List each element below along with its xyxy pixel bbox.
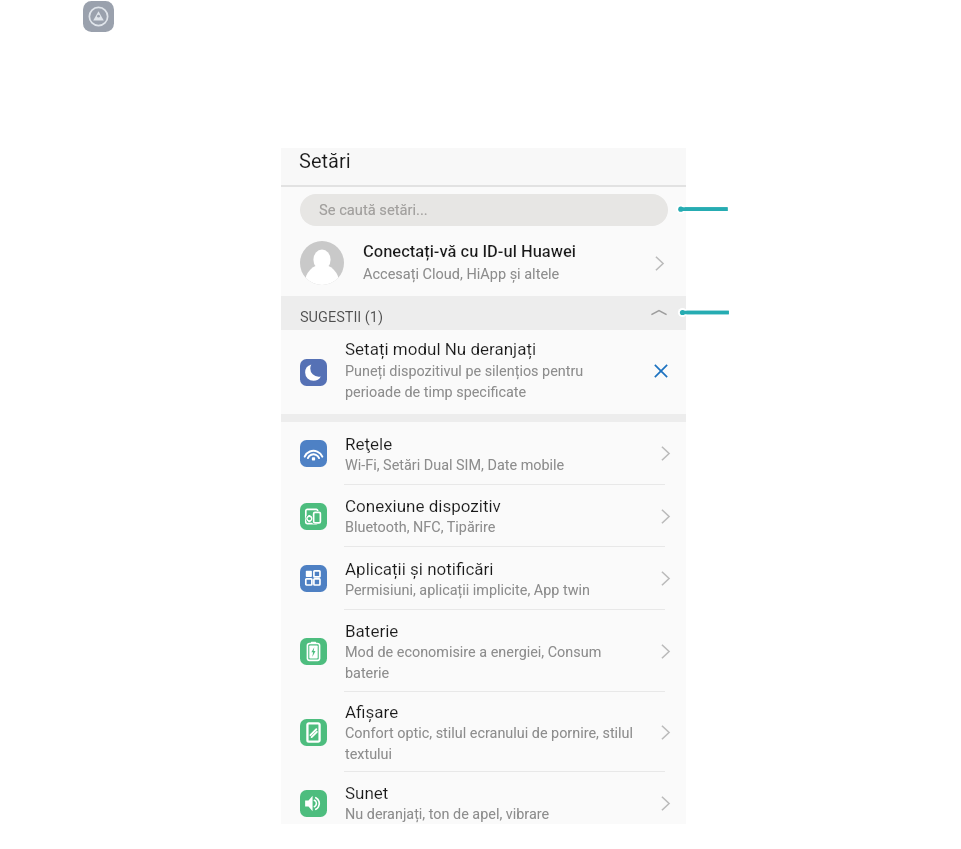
staticText: Bluetooth, NFC, Tipărire bbox=[345, 519, 496, 536]
staticText: Mod de economisire a energiei, Consum ba… bbox=[345, 644, 644, 681]
staticText: Confort optic, stilul ecranului de porni… bbox=[345, 725, 644, 762]
staticText: Permisiuni, aplicații implicite, App twi… bbox=[345, 582, 590, 599]
staticText: SUGESTII (1) bbox=[300, 309, 384, 326]
button[interactable]: Collapse suggestions bbox=[632, 296, 686, 330]
staticText: Sunet bbox=[345, 783, 389, 803]
button[interactable]: Baterie bbox=[281, 610, 686, 692]
staticText: Conectați-vă cu ID-ul Huawei bbox=[363, 242, 577, 261]
staticText: Aplicații și notificări bbox=[345, 559, 494, 579]
staticText: Baterie bbox=[345, 621, 399, 641]
button[interactable]: Aplicații și notificări bbox=[281, 547, 686, 610]
staticText: Accesați Cloud, HiApp și altele bbox=[363, 266, 560, 283]
button[interactable]: Se caută setări... bbox=[300, 194, 668, 226]
staticText: Afișare bbox=[345, 702, 399, 722]
staticText: Puneți dispozitivul pe silențios pentru … bbox=[345, 363, 635, 401]
staticText: Conexiune dispozitiv bbox=[345, 496, 501, 516]
button[interactable]: Conexiune dispozitiv bbox=[281, 485, 686, 547]
staticText: Setați modul Nu deranjați bbox=[345, 339, 537, 359]
staticText: Wi-Fi, Setări Dual SIM, Date mobile bbox=[345, 457, 565, 474]
staticText: Nu deranjați, ton de apel, vibrare bbox=[345, 806, 550, 823]
staticText: Setări bbox=[299, 149, 351, 172]
button[interactable]: Reţele bbox=[281, 422, 686, 485]
button[interactable]: Setați modul Nu deranjați bbox=[281, 330, 686, 414]
button[interactable]: Dismiss suggestion bbox=[635, 330, 686, 414]
button[interactable]: Afișare bbox=[281, 692, 686, 772]
button[interactable]: Settings app icon bbox=[83, 1, 114, 32]
other: Open Huawei ID bbox=[632, 230, 686, 296]
button[interactable]: SUGESTII (1) bbox=[281, 296, 686, 330]
button[interactable]: Sunet bbox=[281, 772, 686, 824]
staticText: Reţele bbox=[345, 434, 393, 454]
button[interactable]: Conectați-vă cu ID-ul Huawei bbox=[281, 230, 686, 296]
staticText: Se caută setări... bbox=[319, 201, 428, 218]
